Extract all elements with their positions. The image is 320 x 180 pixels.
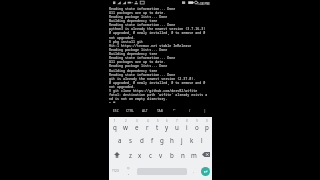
button[interactable]: 1 bbox=[109, 117, 120, 132]
staticText: 3 bbox=[136, 119, 138, 123]
button[interactable]: 5 bbox=[152, 117, 162, 132]
button[interactable]: v bbox=[155, 147, 166, 162]
button[interactable]: 0 bbox=[202, 117, 212, 132]
button[interactable]: c bbox=[145, 147, 155, 162]
staticText: ALT bbox=[142, 108, 148, 112]
staticText: x bbox=[138, 151, 142, 159]
button[interactable]: ALT bbox=[137, 103, 152, 117]
button[interactable]: 8 bbox=[182, 117, 192, 132]
button[interactable]: 3 bbox=[131, 117, 142, 132]
button[interactable]: Shift bbox=[109, 147, 125, 162]
staticText: b bbox=[170, 151, 174, 159]
staticText: z bbox=[129, 151, 132, 159]
staticText: 8 bbox=[186, 119, 188, 123]
button[interactable]: Backspace bbox=[199, 147, 212, 162]
staticText: 5 bbox=[157, 119, 159, 123]
staticText: . bbox=[193, 169, 195, 174]
staticText: 7 bbox=[176, 119, 178, 123]
button[interactable]: k bbox=[187, 132, 197, 147]
button[interactable]: d bbox=[136, 132, 147, 147]
button[interactable]: 9 bbox=[192, 117, 202, 132]
staticText: 2 bbox=[125, 119, 127, 123]
staticText: s bbox=[129, 136, 132, 144]
staticText: k bbox=[190, 136, 194, 144]
button[interactable]: g bbox=[157, 132, 167, 147]
button[interactable]: l bbox=[197, 132, 207, 147]
staticText: y bbox=[165, 123, 169, 131]
staticText: 6 bbox=[166, 119, 168, 123]
button[interactable]: a bbox=[114, 132, 125, 147]
button[interactable]: ☺ bbox=[122, 162, 135, 180]
staticText: ESC bbox=[113, 108, 119, 112]
staticText: ← bbox=[173, 108, 176, 112]
button[interactable]: ESC bbox=[109, 103, 123, 117]
staticText: l bbox=[201, 136, 203, 144]
staticText: | bbox=[204, 108, 206, 112]
staticText: j bbox=[181, 136, 183, 144]
button[interactable]: s bbox=[125, 132, 136, 147]
button[interactable]: Space bbox=[135, 162, 189, 180]
button[interactable]: m bbox=[188, 147, 199, 162]
button[interactable]: z bbox=[125, 147, 135, 162]
staticText: p bbox=[205, 123, 209, 131]
staticText: r bbox=[146, 123, 149, 131]
button[interactable]: h bbox=[167, 132, 177, 147]
button[interactable]: b bbox=[166, 147, 177, 162]
button[interactable]: / bbox=[182, 103, 197, 117]
staticText: CTRL bbox=[126, 108, 134, 112]
staticText: ☺ bbox=[127, 167, 130, 170]
staticText: c bbox=[149, 151, 152, 159]
staticText: n bbox=[181, 151, 185, 159]
staticText: 1 bbox=[114, 119, 116, 123]
button[interactable]: Enter bbox=[198, 162, 212, 180]
button[interactable]: n bbox=[177, 147, 188, 162]
staticText: i bbox=[186, 123, 188, 131]
staticText: 9 bbox=[196, 119, 198, 123]
button[interactable]: ← bbox=[167, 103, 182, 117]
staticText: h bbox=[170, 136, 174, 144]
button[interactable]: x bbox=[135, 147, 145, 162]
staticText: g bbox=[160, 136, 164, 144]
staticText: 0 bbox=[206, 119, 208, 123]
staticText: f bbox=[151, 136, 154, 144]
staticText: 1:38 PM bbox=[197, 1, 210, 5]
staticText: a bbox=[118, 136, 122, 144]
staticText: d bbox=[140, 136, 144, 144]
staticText: / bbox=[189, 108, 191, 112]
button[interactable]: 6 bbox=[162, 117, 172, 132]
staticText: TAB bbox=[157, 108, 163, 112]
button[interactable]: CTRL bbox=[123, 103, 137, 117]
staticText: m bbox=[191, 151, 197, 159]
staticText: w bbox=[123, 123, 128, 131]
button[interactable]: 7 bbox=[172, 117, 182, 132]
button[interactable]: 2 bbox=[120, 117, 131, 132]
button[interactable]: ?123 bbox=[109, 162, 122, 180]
button[interactable]: TAB bbox=[152, 103, 167, 117]
staticText: , bbox=[128, 170, 130, 175]
staticText: o bbox=[195, 123, 199, 131]
button[interactable]: 4 bbox=[142, 117, 152, 132]
staticText: e bbox=[135, 123, 139, 131]
staticText: u bbox=[175, 123, 179, 131]
staticText: ?123 bbox=[112, 169, 119, 173]
button[interactable]: j bbox=[177, 132, 187, 147]
staticText: q bbox=[113, 123, 117, 131]
staticText: v bbox=[159, 151, 163, 159]
button[interactable]: | bbox=[197, 103, 212, 117]
staticText: 4 bbox=[147, 119, 149, 123]
button[interactable]: f bbox=[147, 132, 157, 147]
staticText: t bbox=[156, 123, 159, 131]
